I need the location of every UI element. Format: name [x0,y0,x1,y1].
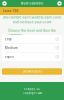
staticText: Choose the level and then the category [8,28,56,37]
button[interactable]: Settings [56,0,62,7]
button[interactable]: Get more coins [2,68,62,75]
staticText: Medium [5,46,18,50]
button[interactable]: Expert [2,52,62,61]
button[interactable]: Easy [2,35,62,44]
staticText: VS Apps, LLC [23,87,40,91]
button[interactable]: Menu [1,0,7,7]
button[interactable]: Medium [2,44,62,52]
staticText: and increase your score [12,20,51,24]
staticText: Copyright 2020 [22,91,41,95]
staticText: Expert [5,55,14,59]
staticText: Coins: 100 [2,9,18,13]
staticText: Word Scramble [20,2,43,5]
staticText: Unscramble each word to earn coins [2,15,61,19]
staticText: Easy [5,37,11,41]
staticText: Get more coins [22,70,41,73]
